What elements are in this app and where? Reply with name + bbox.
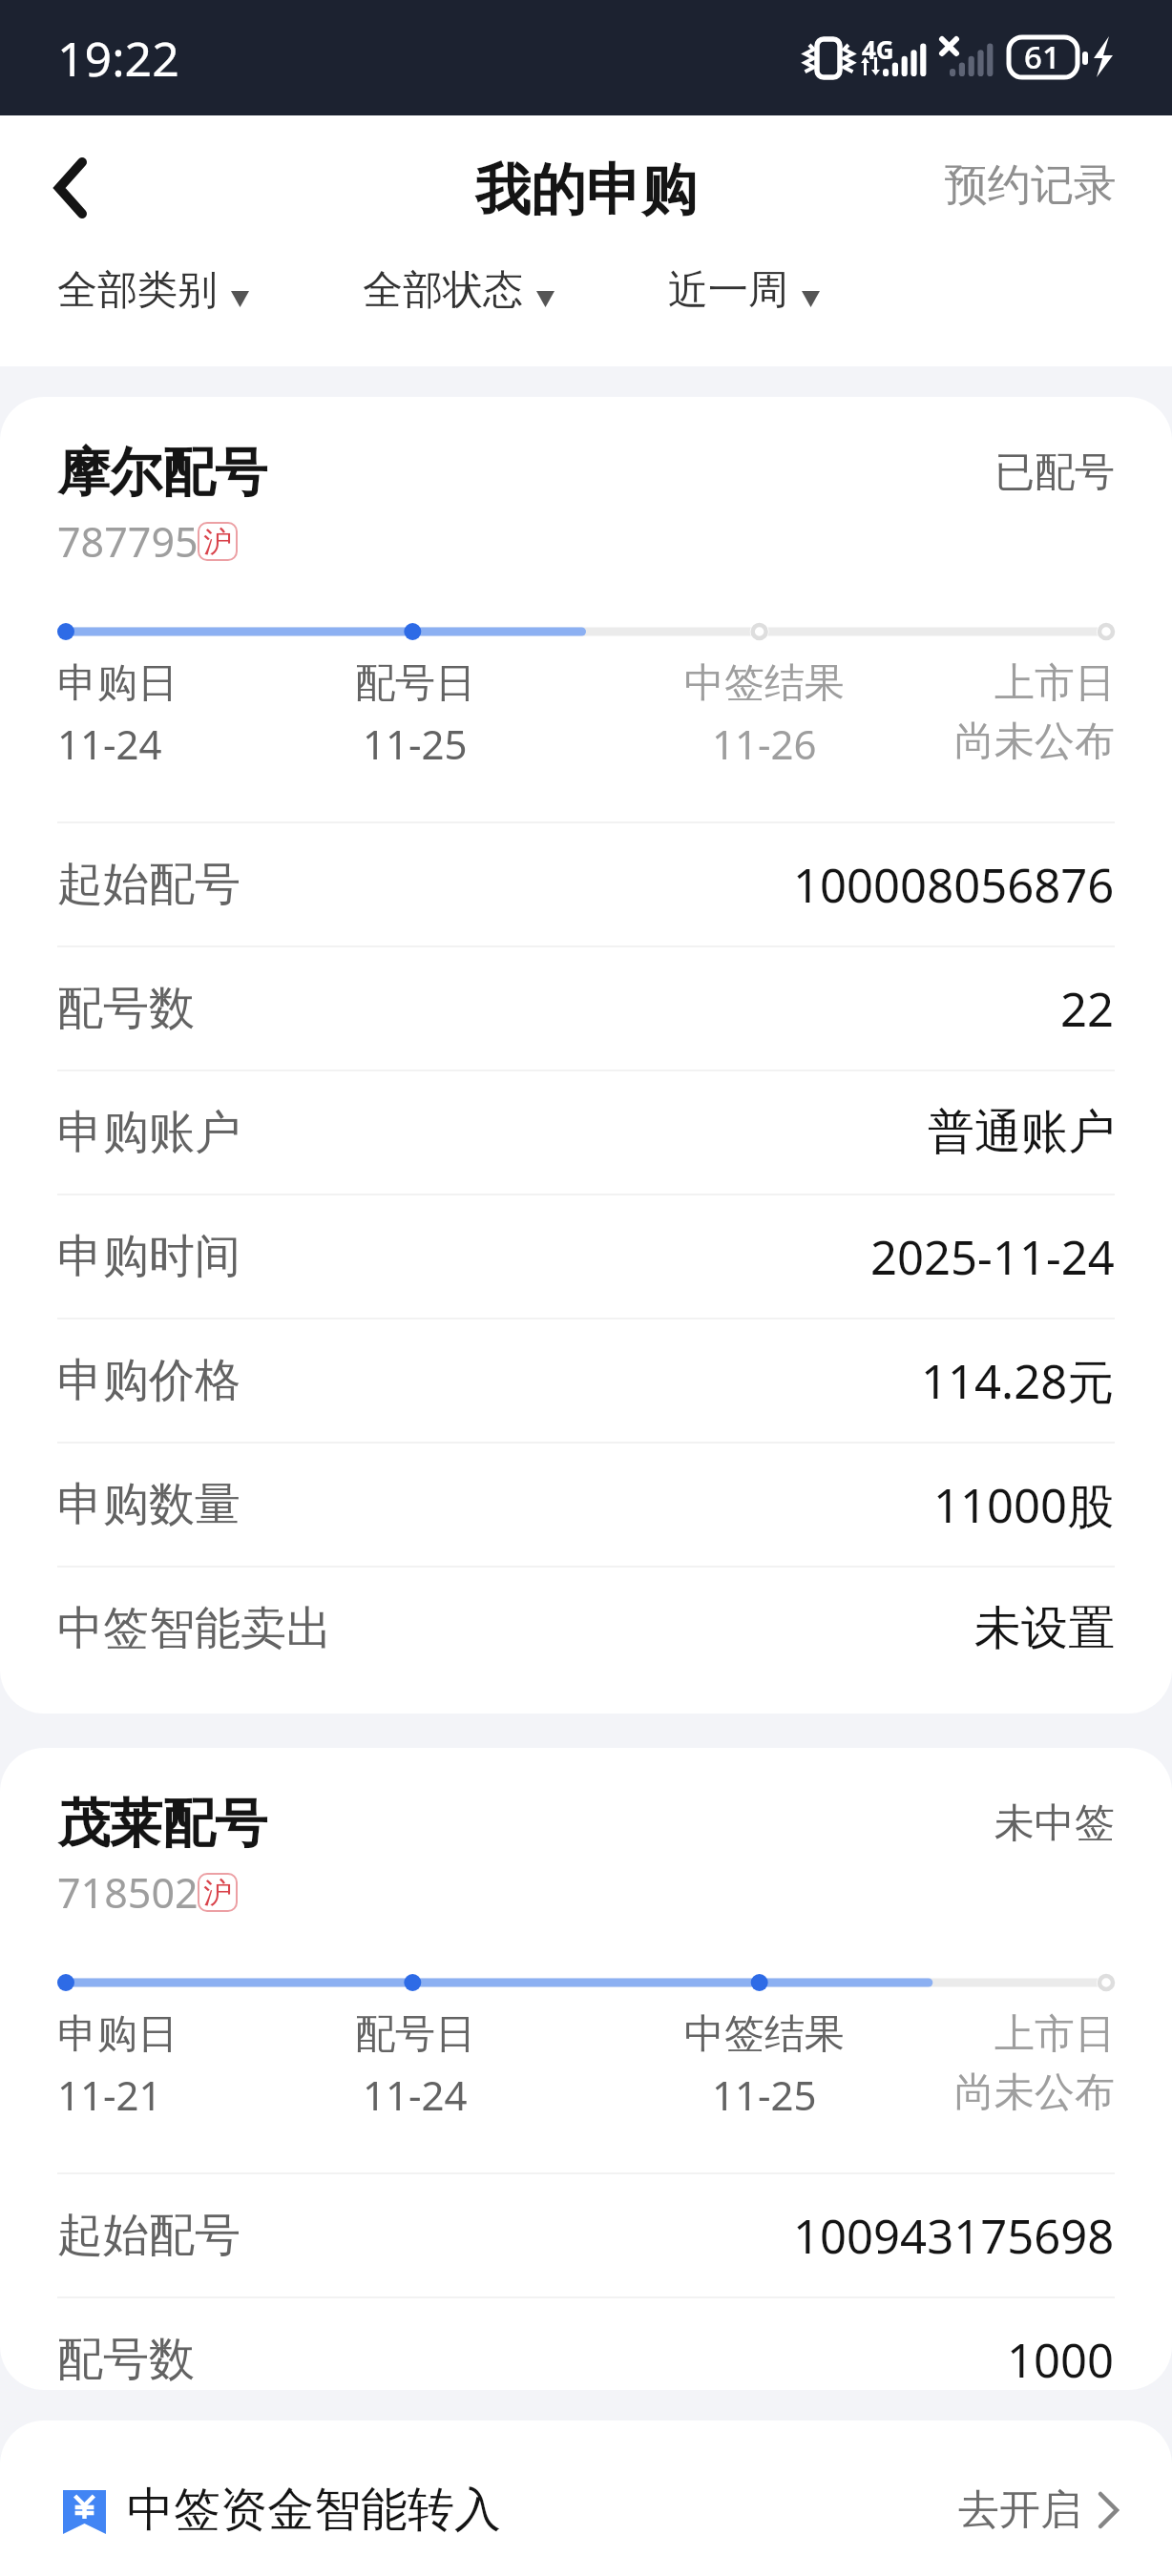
staticText: 1000 [1007,2328,1115,2390]
staticText: 11-25 [712,2067,817,2122]
staticText: 上市日 [994,658,1115,709]
staticText: 我的申购 [475,156,697,225]
staticText: 19:22 [57,26,179,91]
staticText: 上市日 [994,2009,1115,2060]
staticText: 2025-11-24 [870,1225,1115,1289]
staticText: 11-25 [363,717,468,771]
staticText: 4G [862,32,894,66]
staticText: 100943175698 [793,2204,1115,2268]
staticText: 茂莱配号 [57,1791,267,1857]
staticText: 100008056876 [793,853,1115,917]
staticText: 中签结果 [684,658,845,709]
staticText: 已配号 [994,447,1115,498]
staticText: 中签智能卖出 [57,1600,332,1657]
button[interactable]: 预约记录 [889,141,1172,230]
button[interactable]: 全部状态 [363,265,555,316]
staticText: 61 [1024,35,1060,78]
staticText: 11-24 [57,717,162,771]
button[interactable]: 中签资金智能转入 [0,2420,1172,2576]
staticText: 11-24 [363,2067,468,2122]
staticText: 11-26 [712,717,817,771]
button[interactable]: 全部类别 [57,265,249,316]
staticText: 22 [1060,977,1115,1041]
staticText: 718502 [57,1864,199,1921]
staticText: 配号日 [355,2009,475,2060]
staticText: 申购日 [57,658,178,709]
staticText: 未设置 [974,1599,1115,1658]
staticText: 沪 [203,524,232,560]
staticText: 申购日 [57,2009,178,2060]
staticText: 申购数量 [57,1476,241,1533]
staticText: 全部类别 [57,265,218,316]
staticText: 申购价格 [57,1352,241,1409]
staticText: 起始配号 [57,856,241,913]
staticText: 去开启 [958,2484,1081,2536]
staticText: 787795 [57,513,199,570]
button[interactable]: 摩尔配号 [0,397,1172,1714]
staticText: 尚未公布 [954,2067,1115,2118]
button[interactable]: Back [13,132,128,244]
staticText: 配号数 [57,980,195,1037]
staticText: 沪 [203,1875,232,1911]
button[interactable]: 茂莱配号 [0,1748,1172,2390]
staticText: 申购账户 [57,1104,241,1161]
staticText: 11000股 [933,1473,1115,1537]
staticText: 近一周 [668,265,788,316]
staticText: 未中签 [994,1798,1115,1849]
staticText: 全部状态 [363,265,523,316]
staticText: 申购时间 [57,1228,241,1285]
staticText: 114.28元 [921,1349,1115,1413]
staticText: 配号日 [355,658,475,709]
staticText: 预约记录 [945,158,1117,213]
staticText: 摩尔配号 [57,440,267,506]
button[interactable]: 近一周 [668,265,820,316]
staticText: 中签结果 [684,2009,845,2060]
staticText: 尚未公布 [954,717,1115,767]
staticText: 起始配号 [57,2207,241,2264]
staticText: 配号数 [57,2331,195,2388]
staticText: 11-21 [57,2067,162,2122]
staticText: 中签资金智能转入 [127,2481,501,2540]
staticText: 普通账户 [928,1103,1115,1162]
